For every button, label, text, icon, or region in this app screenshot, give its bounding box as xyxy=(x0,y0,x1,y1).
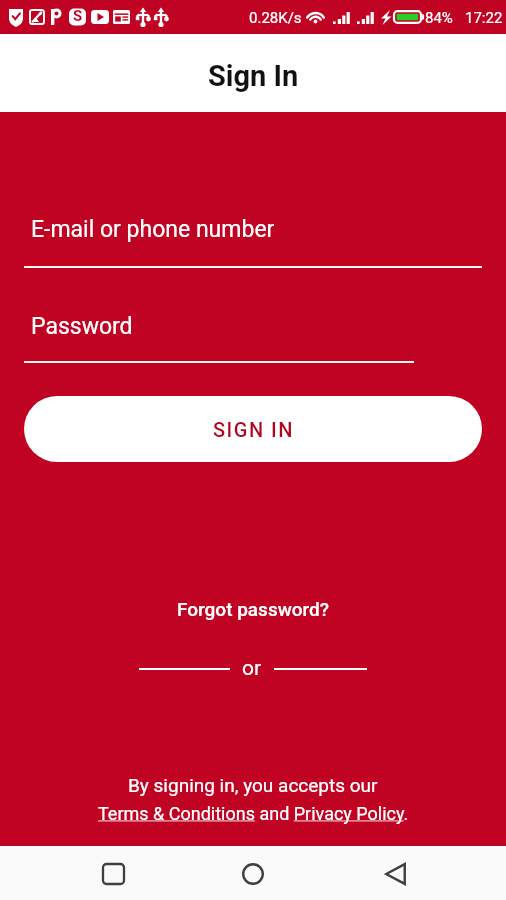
staticText: S xyxy=(73,7,83,25)
button[interactable]: Forgot password? xyxy=(177,598,330,620)
staticText: Password xyxy=(31,313,133,340)
staticText: 17:22 xyxy=(465,9,503,27)
staticText: 84% xyxy=(425,9,453,27)
button[interactable]: Terms & Conditions and Privacy Policy. xyxy=(98,803,409,824)
button[interactable]: Password xyxy=(24,306,414,363)
button[interactable]: SIGN IN xyxy=(24,396,482,462)
button[interactable]: E-mail or phone number xyxy=(24,210,482,268)
staticText: Terms & Conditions and Privacy Policy. xyxy=(98,803,409,824)
staticText: 0.28K/s xyxy=(249,9,302,27)
button[interactable]: Back xyxy=(367,848,423,900)
staticText: SIGN IN xyxy=(213,418,294,441)
staticText: By signing in, you accepts our xyxy=(128,774,378,796)
staticText: E-mail or phone number xyxy=(31,216,275,243)
staticText: or xyxy=(242,656,262,681)
button[interactable]: Home xyxy=(225,848,281,900)
staticText: Sign In xyxy=(208,59,299,93)
staticText: Forgot password? xyxy=(177,598,330,620)
button[interactable]: Recent apps xyxy=(85,848,141,900)
